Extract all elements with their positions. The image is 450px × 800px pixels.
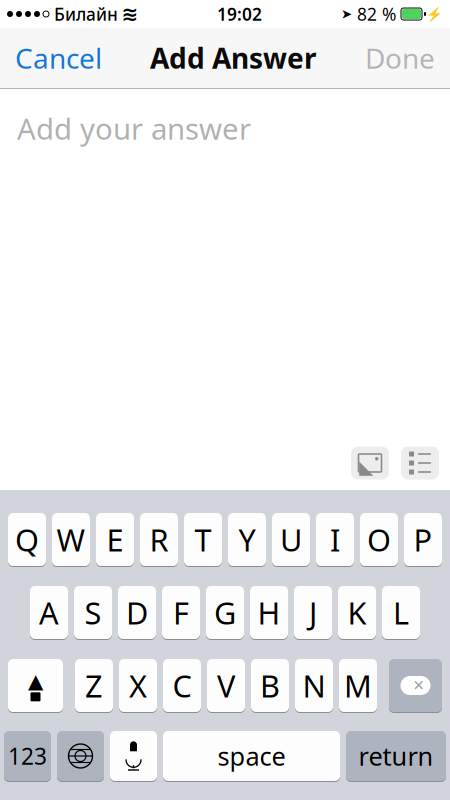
button[interactable]: Dictation [110, 730, 157, 782]
staticText: V [217, 665, 235, 706]
staticText: H [257, 592, 280, 633]
staticText: N [302, 665, 325, 706]
staticText: B [260, 665, 280, 706]
staticText: P [413, 519, 432, 560]
button[interactable]: X [119, 658, 157, 713]
button[interactable]: Z [75, 658, 113, 713]
button[interactable]: Next keyboard [57, 730, 104, 782]
button[interactable]: Shift [8, 658, 63, 713]
staticText: M [344, 665, 372, 706]
button[interactable]: J [294, 585, 332, 640]
button[interactable]: Add list [399, 444, 441, 482]
staticText: A [39, 592, 59, 633]
staticText: Add your answer [17, 109, 251, 148]
staticText: T [194, 519, 211, 560]
button[interactable]: H [250, 585, 288, 640]
button[interactable]: G [206, 585, 244, 640]
staticText: 19:02 [217, 2, 262, 25]
staticText: U [280, 519, 302, 560]
staticText: space [217, 739, 285, 773]
staticText: J [309, 592, 317, 633]
button[interactable]: A [30, 585, 68, 640]
staticText: E [106, 519, 123, 560]
staticText: ▲ [28, 670, 43, 692]
staticText: ➤ [341, 6, 352, 21]
staticText: W [56, 519, 85, 560]
button[interactable]: R [140, 512, 178, 567]
staticText: Z [85, 665, 103, 706]
staticText: Билайн [49, 2, 118, 25]
staticText: L [393, 592, 409, 633]
button[interactable]: B [251, 658, 289, 713]
button[interactable]: space [163, 730, 340, 782]
staticText: G [214, 592, 236, 633]
staticText: ⚡ [426, 6, 443, 22]
staticText: K [347, 592, 366, 633]
staticText: Cancel [15, 39, 102, 77]
button[interactable]: T [184, 512, 222, 567]
button[interactable]: 123 [4, 730, 51, 782]
button[interactable]: D [118, 585, 156, 640]
staticText: ≋ [121, 3, 138, 25]
button[interactable]: C [163, 658, 201, 713]
button[interactable]: F [162, 585, 200, 640]
staticText: D [126, 592, 148, 633]
staticText: Y [238, 519, 255, 560]
button[interactable]: K [338, 585, 376, 640]
staticText: Done [365, 39, 435, 77]
staticText: O [367, 519, 391, 560]
staticText: 82 % [352, 2, 396, 25]
staticText: I [330, 519, 340, 560]
button[interactable]: U [272, 512, 310, 567]
button[interactable]: Done [355, 36, 445, 80]
button[interactable]: return [346, 730, 446, 782]
staticText: R [149, 519, 168, 560]
staticText: Add Answer [150, 39, 317, 77]
button[interactable]: L [382, 585, 420, 640]
staticText: F [173, 592, 189, 633]
button[interactable]: Y [228, 512, 266, 567]
staticText: ◣ [359, 456, 373, 478]
button[interactable]: E [96, 512, 134, 567]
button[interactable]: I [316, 512, 354, 567]
button[interactable]: O [360, 512, 398, 567]
staticText: return [358, 739, 433, 773]
button[interactable]: Delete [389, 658, 442, 713]
staticText: S [84, 592, 101, 633]
button[interactable]: N [295, 658, 333, 713]
button[interactable]: Add photo [349, 444, 391, 482]
staticText: ✕ [412, 677, 424, 694]
staticText: 123 [8, 741, 47, 771]
button[interactable]: Q [8, 512, 46, 567]
button[interactable]: M [339, 658, 377, 713]
button[interactable]: Cancel [5, 36, 112, 80]
staticText: C [172, 665, 191, 706]
button[interactable]: W [52, 512, 90, 567]
button[interactable]: S [74, 585, 112, 640]
button[interactable]: P [404, 512, 442, 567]
staticText: X [129, 665, 147, 706]
staticText: Q [15, 519, 39, 560]
button[interactable]: V [207, 658, 245, 713]
